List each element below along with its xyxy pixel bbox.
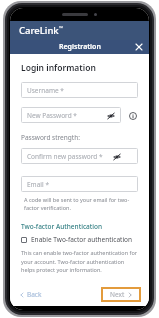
staticText: CareLink — [19, 24, 59, 37]
button[interactable]: Show password — [111, 151, 122, 162]
button[interactable]: Email * — [21, 176, 138, 192]
staticText: New Password * — [27, 111, 77, 120]
button[interactable]: Enable Two-factor authentication — [21, 235, 138, 244]
staticText: Password strength: — [21, 133, 80, 142]
button[interactable]: Back — [20, 290, 42, 299]
button[interactable]: Show password — [105, 110, 116, 121]
staticText: ™ — [59, 25, 63, 32]
button[interactable]: Username * — [21, 82, 138, 98]
button[interactable]: Confirm new password * — [21, 148, 138, 164]
button[interactable]: Password requirements info — [127, 110, 138, 121]
staticText: Next — [110, 290, 125, 299]
staticText: This can enable two-factor authenticatio… — [21, 249, 138, 273]
button[interactable]: Next — [101, 287, 141, 302]
staticText: Registration — [59, 42, 101, 52]
staticText: Confirm new password * — [27, 152, 103, 161]
staticText: Username * — [27, 86, 64, 95]
staticText: Email * — [27, 180, 49, 189]
staticText: Enable Two-factor authentication — [31, 235, 133, 244]
button[interactable]: Close — [133, 41, 145, 53]
staticText: Back — [27, 290, 42, 299]
staticText: Two-factor Authentication — [21, 222, 103, 231]
staticText: A code will be sent to your email for tw… — [24, 196, 130, 212]
staticText: Login information — [21, 62, 96, 74]
button[interactable]: New Password * — [21, 107, 121, 123]
